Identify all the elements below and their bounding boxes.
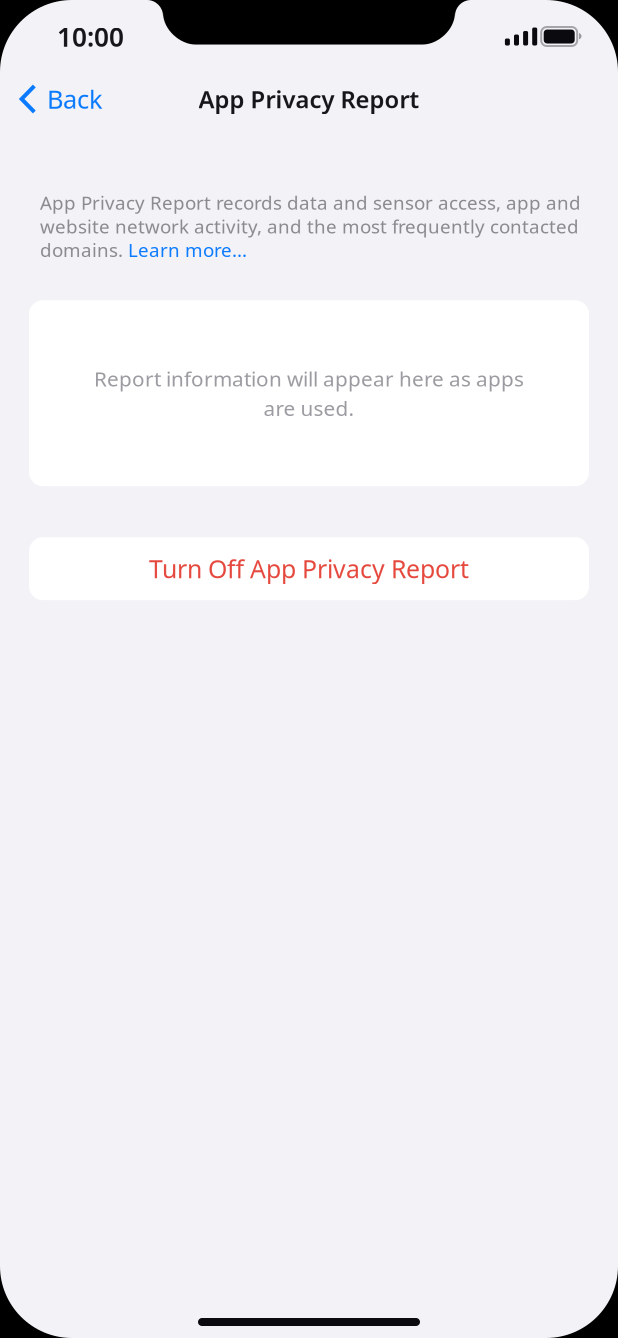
staticText: 10:00 — [57, 19, 124, 54]
button[interactable]: Turn Off App Privacy Report — [0, 537, 618, 600]
staticText: App Privacy Report — [198, 83, 419, 115]
staticText: App Privacy Report records data and sens… — [40, 190, 581, 215]
staticText: are used. — [263, 394, 354, 422]
button[interactable]: Back — [0, 73, 117, 125]
staticText: website network activity, and the most f… — [40, 214, 579, 239]
button[interactable]: Learn more... — [128, 237, 247, 262]
staticText: Back — [47, 82, 103, 116]
staticText: domains. — [40, 237, 128, 262]
staticText: Learn more... — [128, 237, 247, 262]
staticText: Turn Off App Privacy Report — [149, 552, 469, 585]
staticText: Report information will appear here as a… — [94, 365, 524, 392]
